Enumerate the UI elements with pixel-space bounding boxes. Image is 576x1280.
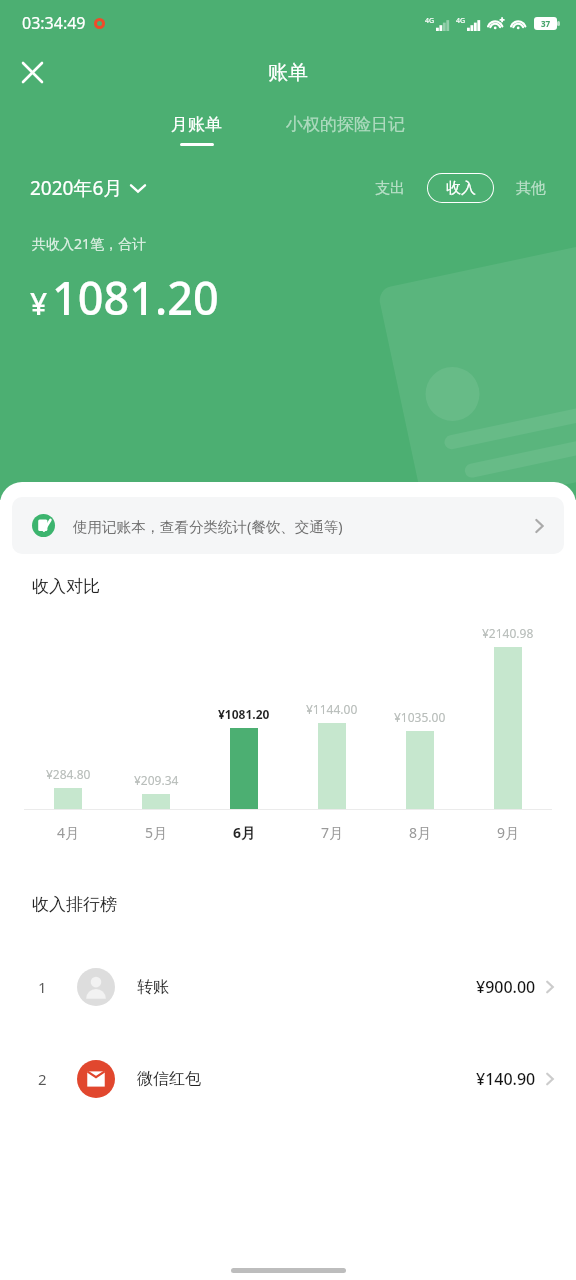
button[interactable]: 小权的探险日记 — [276, 114, 415, 135]
staticText: ¥2140.98 — [482, 625, 534, 641]
staticText: 4G — [425, 16, 435, 26]
button[interactable]: 使用记账本，查看分类统计(餐饮、交通等) — [12, 497, 564, 554]
staticText: ¥900.00 — [476, 976, 536, 998]
staticText: ¥1144.00 — [306, 701, 358, 717]
button[interactable]: 其他 — [508, 175, 554, 202]
staticText: 5月 — [112, 823, 200, 842]
staticText: 1 — [38, 977, 47, 997]
staticText: 收入 — [446, 179, 476, 198]
staticText: 03:34:49 — [22, 12, 86, 34]
staticText: ¥140.90 — [476, 1068, 536, 1090]
button[interactable]: 2 — [0, 1033, 576, 1125]
staticText: ¥1081.20 — [218, 706, 270, 722]
staticText: 6月 — [200, 823, 288, 842]
staticText: 小权的探险日记 — [286, 114, 405, 135]
button[interactable]: Close — [8, 48, 56, 96]
staticText: 收入排行榜 — [32, 894, 117, 915]
staticText: 4G — [456, 16, 466, 26]
staticText: 账单 — [268, 60, 308, 85]
button[interactable]: 1 — [0, 941, 576, 1033]
staticText: ¥209.34 — [134, 772, 179, 788]
staticText: 共收入21笔，合计 — [32, 234, 147, 253]
button[interactable]: 月账单 — [161, 114, 232, 146]
staticText: 使用记账本，查看分类统计(餐饮、交通等) — [73, 516, 343, 536]
staticText: ¥284.80 — [46, 766, 91, 782]
staticText: 8月 — [376, 823, 464, 842]
staticText: 其他 — [516, 179, 546, 198]
staticText: 2 — [38, 1069, 47, 1089]
staticText: 月账单 — [171, 114, 222, 135]
staticText: 转账 — [137, 977, 169, 997]
staticText: 9月 — [464, 823, 552, 842]
staticText: ¥1035.00 — [394, 709, 446, 725]
staticText: 支出 — [375, 179, 405, 198]
staticText: 37 — [541, 18, 551, 29]
staticText: 1081.20 — [52, 267, 219, 328]
staticText: 4月 — [24, 823, 112, 842]
staticText: 收入对比 — [32, 576, 100, 597]
button[interactable]: 2020年6月 — [30, 175, 145, 201]
staticText: 2020年6月 — [30, 175, 123, 201]
staticText: ¥ — [30, 283, 48, 324]
staticText: 微信红包 — [137, 1069, 201, 1089]
button[interactable]: 收入 — [427, 173, 494, 203]
button[interactable]: 支出 — [367, 175, 413, 202]
staticText: 7月 — [288, 823, 376, 842]
